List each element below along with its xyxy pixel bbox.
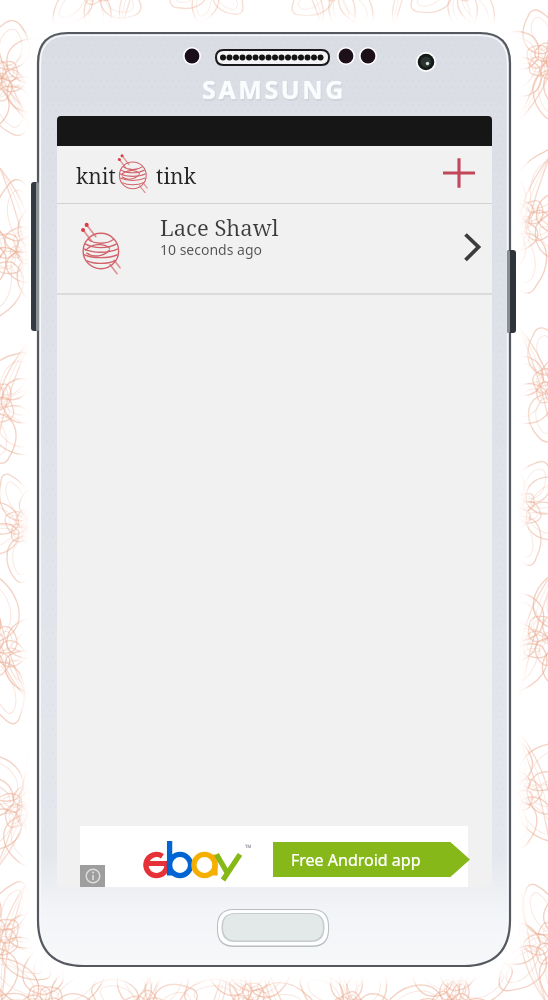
- staticText: ™: [245, 841, 252, 853]
- staticText: Free Android app: [291, 849, 421, 871]
- staticText: SAMSUNG: [203, 74, 347, 108]
- staticText: 10 seconds ago: [160, 240, 262, 259]
- staticText: SAMSUNG: [202, 72, 346, 106]
- button[interactable]: Ad information: [80, 865, 105, 887]
- button[interactable]: eBay Free Android app advertisement: [80, 826, 468, 887]
- staticText: tink: [156, 162, 196, 191]
- button[interactable]: Lace Shawl: [57, 204, 492, 293]
- button[interactable]: Add new project: [438, 146, 492, 203]
- staticText: knit: [76, 162, 116, 191]
- staticText: Lace Shawl: [160, 212, 279, 242]
